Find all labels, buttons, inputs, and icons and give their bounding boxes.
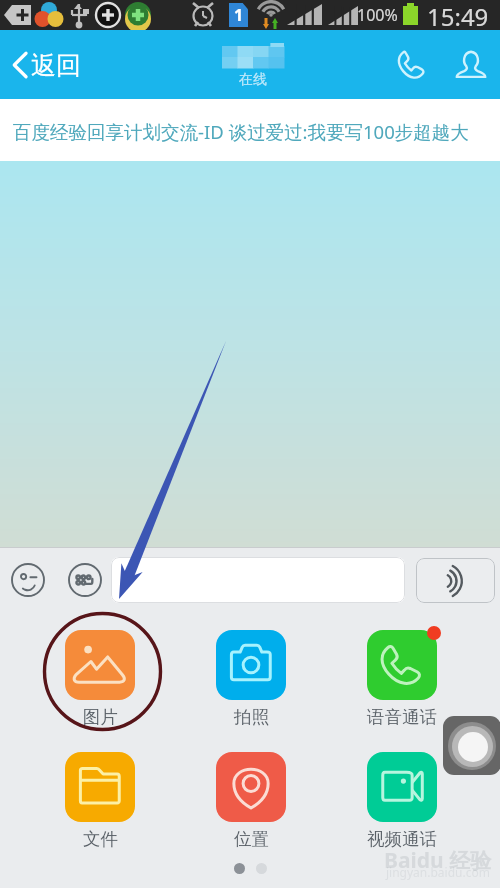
button[interactable]: 文件 [45,742,155,854]
button[interactable]: 返回 [12,36,81,94]
staticText: 拍照 [234,706,269,728]
staticText: 图片 [83,706,118,728]
button[interactable]: 图片 [45,620,155,732]
staticText: 视频通话 [367,828,437,850]
button[interactable]: Voice message [416,558,495,603]
staticText: jingyan.baidu.com [386,864,490,880]
staticText: 语音通话 [367,706,437,728]
button[interactable]: 语音通话 [347,620,457,732]
button[interactable]: Assistive touch [443,716,500,775]
staticText: Baidu 经验 [384,846,492,875]
staticText: 在线 [239,71,267,89]
staticText: 1 [234,4,244,26]
button[interactable]: 拍照 [196,620,306,732]
button[interactable]: 视频通话 [347,742,457,854]
staticText: 文件 [83,828,118,850]
staticText: 位置 [234,828,269,850]
staticText: 返回 [31,50,81,81]
button[interactable]: Message input [111,557,405,603]
button[interactable]: 百度经验回享计划交流-ID 谈过爱过:我要写100步超越大 [0,99,500,161]
staticText: 15:49 [427,0,489,30]
staticText: 百度经验回享计划交流-ID 谈过爱过:我要写100步超越大 [13,119,469,144]
button[interactable]: Keyboard [68,563,102,597]
button[interactable]: 位置 [196,742,306,854]
button[interactable]: Profile [449,42,493,86]
button[interactable]: Emoji [11,563,45,597]
staticText: 100% [357,4,398,26]
button[interactable]: Voice call [388,43,432,87]
